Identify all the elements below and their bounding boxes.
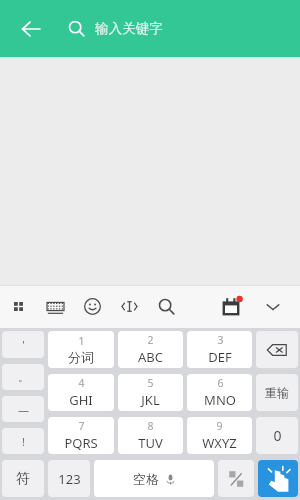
button[interactable]: 8 — [118, 417, 183, 454]
button[interactable]: 空格 — [94, 460, 214, 497]
button[interactable]: 输入关键字 — [52, 0, 300, 57]
button[interactable]: 9 — [187, 417, 252, 454]
staticText: ! — [22, 434, 25, 449]
staticText: 5 — [147, 376, 154, 390]
button[interactable]: Back — [10, 8, 52, 50]
staticText: DEF — [208, 348, 232, 366]
button[interactable]: Search — [148, 285, 185, 328]
button[interactable]: Calendar — [212, 288, 250, 326]
staticText: 7 — [78, 419, 85, 433]
button[interactable]: Backspace — [256, 331, 298, 368]
staticText: 0 — [273, 426, 282, 445]
button[interactable]: 2 — [118, 331, 183, 368]
button[interactable]: Hide keyboard — [256, 288, 290, 326]
button[interactable]: ' — [2, 331, 44, 358]
staticText: 空格 — [133, 471, 159, 487]
staticText: ' — [22, 337, 25, 352]
staticText: 1 — [78, 334, 85, 348]
button[interactable]: 0 — [256, 417, 298, 454]
button[interactable]: Menu — [0, 285, 37, 328]
staticText: 符 — [16, 470, 30, 488]
button[interactable]: Keyboard — [37, 285, 74, 328]
button[interactable]: 4 — [48, 374, 114, 411]
staticText: TUV — [138, 434, 163, 452]
button[interactable]: Enter — [258, 460, 298, 497]
staticText: GHI — [69, 391, 93, 409]
staticText: 4 — [78, 376, 85, 390]
staticText: MNO — [204, 391, 236, 409]
button[interactable]: Switch language — [218, 460, 254, 497]
button[interactable]: 。 — [2, 364, 44, 390]
button[interactable]: ! — [2, 428, 44, 454]
staticText: 6 — [217, 376, 224, 390]
button[interactable]: 6 — [187, 374, 252, 411]
staticText: 8 — [147, 419, 154, 433]
staticText: 123 — [58, 470, 81, 488]
staticText: JKL — [141, 391, 160, 409]
button[interactable]: 7 — [48, 417, 114, 454]
staticText: PQRS — [64, 434, 98, 452]
button[interactable]: 3 — [187, 331, 252, 368]
button[interactable]: 符 — [2, 460, 44, 497]
staticText: 分词 — [68, 349, 94, 365]
button[interactable]: 重输 — [256, 374, 298, 411]
button[interactable]: — — [2, 396, 44, 422]
staticText: 9 — [216, 419, 223, 433]
button[interactable]: 5 — [118, 374, 183, 411]
staticText: ABC — [138, 348, 163, 366]
staticText: — — [18, 402, 29, 417]
staticText: 输入关键字 — [95, 20, 163, 37]
button[interactable]: Cursor — [111, 285, 148, 328]
staticText: 2 — [147, 333, 154, 347]
button[interactable]: Emoji — [74, 285, 111, 328]
staticText: 。 — [18, 370, 29, 384]
button[interactable]: 123 — [48, 460, 90, 497]
staticText: 重输 — [265, 385, 289, 400]
staticText: WXYZ — [202, 434, 237, 452]
staticText: 3 — [217, 333, 224, 347]
button[interactable]: 1 — [48, 331, 114, 368]
